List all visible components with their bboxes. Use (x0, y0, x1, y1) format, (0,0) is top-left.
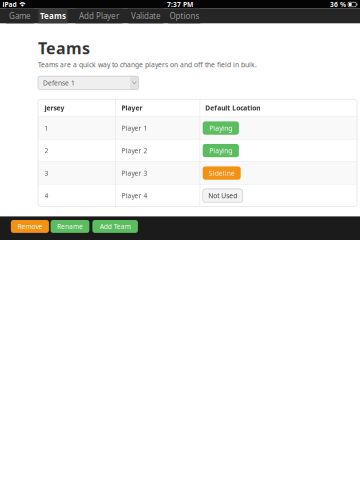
staticText: Player 3 (122, 169, 148, 177)
staticText: Sideline (209, 169, 235, 177)
staticText: Teams (38, 37, 90, 59)
staticText: Add Player (79, 11, 119, 21)
staticText: Player 2 (122, 146, 148, 155)
button[interactable]: Remove (11, 220, 49, 233)
staticText: Teams (40, 11, 66, 21)
staticText: 36 % (330, 0, 346, 9)
staticText: Playing (209, 146, 232, 155)
button[interactable]: Select team: Defense 1 (38, 76, 139, 90)
staticText: Remove (17, 222, 42, 231)
staticText: Player (122, 103, 143, 112)
button[interactable]: Sideline (203, 166, 241, 180)
staticText: 4 (44, 191, 48, 200)
staticText: iPad (2, 0, 16, 9)
staticText: 2 (44, 146, 48, 155)
button[interactable]: Rename (51, 220, 89, 233)
staticText: Not Used (208, 191, 237, 200)
button[interactable]: Options (168, 9, 200, 23)
button[interactable]: Add Player (75, 9, 122, 23)
staticText: Defense 1 (43, 78, 75, 87)
staticText: Game (9, 11, 31, 21)
button[interactable]: Game (6, 9, 34, 23)
staticText: Validate (131, 11, 161, 21)
staticText: 1 (44, 124, 48, 132)
button[interactable]: Teams (38, 9, 67, 23)
staticText: Player 1 (122, 124, 148, 132)
button[interactable]: Playing (203, 144, 239, 157)
button[interactable]: Playing (203, 121, 239, 135)
staticText: Default Location (205, 103, 260, 112)
staticText: Jersey (44, 103, 64, 112)
staticText: Player 4 (122, 191, 148, 200)
button[interactable]: Add Team (92, 220, 138, 233)
staticText: Options (169, 11, 199, 21)
staticText: Playing (209, 124, 232, 132)
button[interactable]: Validate (128, 9, 163, 23)
button[interactable]: Not Used (203, 189, 243, 202)
staticText: 3 (44, 169, 48, 177)
staticText: 7:37 PM (167, 0, 193, 9)
staticText: Teams are a quick way to change players … (38, 60, 257, 69)
staticText: Rename (57, 222, 83, 231)
staticText: Add Team (100, 222, 131, 231)
